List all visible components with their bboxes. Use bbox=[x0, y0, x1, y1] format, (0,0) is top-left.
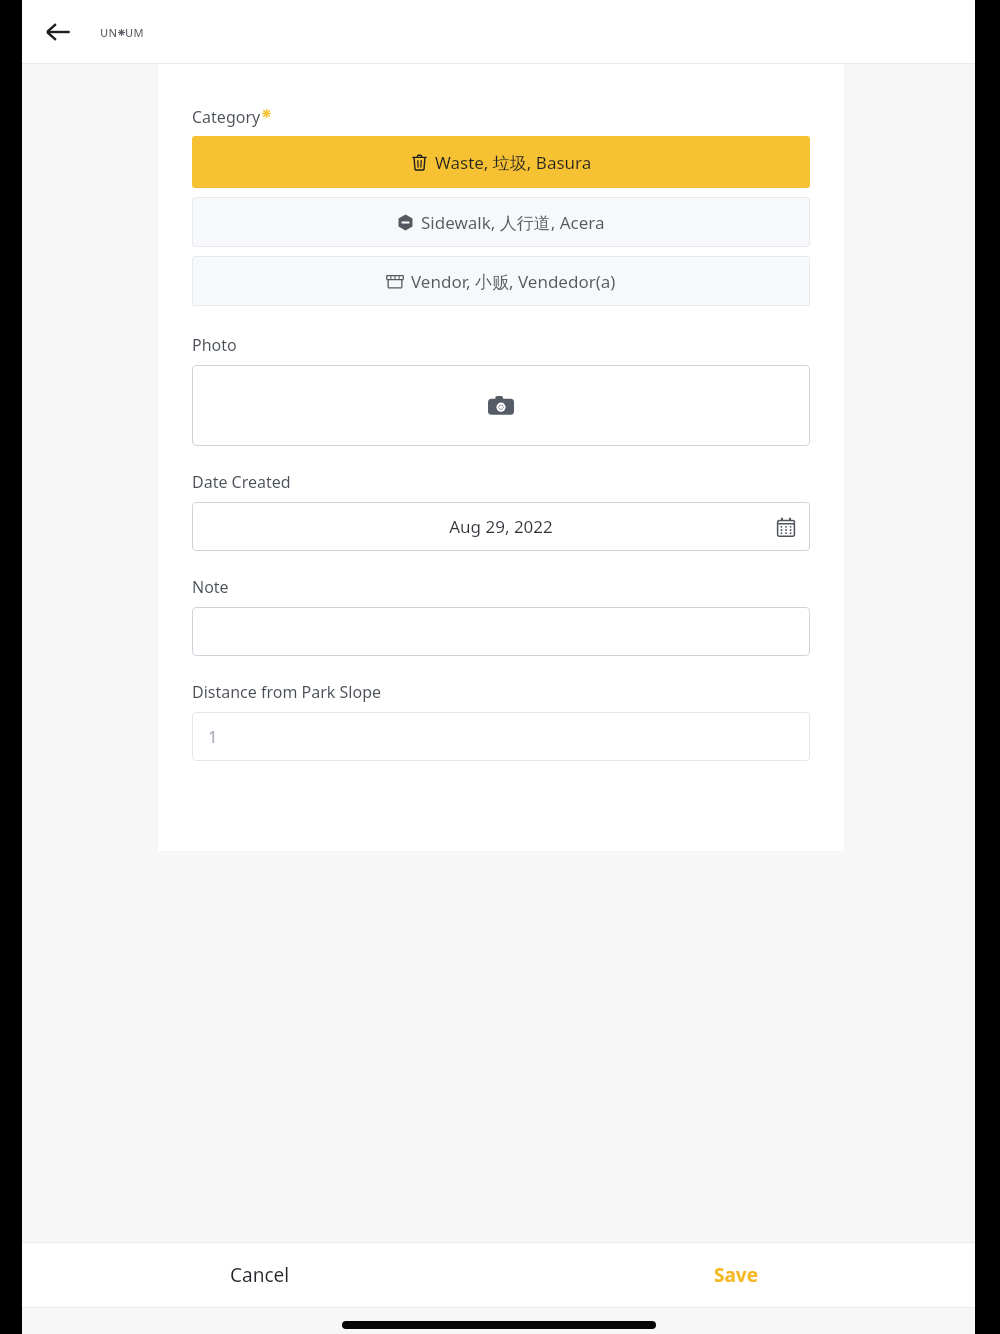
button[interactable]: Vendor, 小贩, Vendedor(a) bbox=[192, 256, 810, 306]
button[interactable]: Sidewalk, 人行道, Acera bbox=[192, 197, 810, 247]
staticText: Date Created bbox=[192, 471, 291, 493]
staticText: Note bbox=[192, 576, 229, 598]
button[interactable]: Cancel bbox=[22, 1243, 498, 1307]
staticText: UN bbox=[100, 25, 118, 40]
staticText: UM bbox=[125, 25, 145, 40]
staticText: Cancel bbox=[230, 1262, 290, 1288]
staticText: Photo bbox=[192, 334, 237, 356]
staticText: Waste, 垃圾, Basura bbox=[435, 151, 592, 174]
staticText: Category bbox=[192, 106, 261, 128]
staticText: Save bbox=[714, 1262, 759, 1288]
staticText: Aug 29, 2022 bbox=[449, 515, 553, 538]
button[interactable] bbox=[192, 607, 810, 656]
button[interactable]: Back bbox=[30, 4, 86, 60]
button[interactable]: Waste, 垃圾, Basura bbox=[192, 136, 810, 188]
button[interactable]: Save bbox=[498, 1243, 975, 1307]
button[interactable]: Take photo bbox=[192, 365, 810, 446]
staticText: 1 bbox=[208, 725, 218, 748]
button[interactable]: Aug 29, 2022 bbox=[192, 502, 810, 551]
staticText: Sidewalk, 人行道, Acera bbox=[421, 211, 605, 234]
staticText: Vendor, 小贩, Vendedor(a) bbox=[411, 270, 616, 293]
button[interactable]: 1 bbox=[192, 712, 810, 761]
staticText: Distance from Park Slope bbox=[192, 681, 381, 703]
